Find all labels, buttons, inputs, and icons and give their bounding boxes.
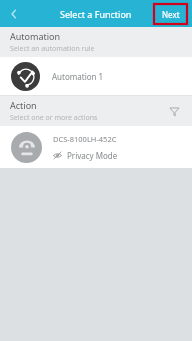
button[interactable]: Next: [154, 4, 187, 24]
button[interactable]: DCS-8100LH-452C: [0, 126, 192, 168]
staticText: Select a Function: [60, 8, 132, 20]
staticText: Action: [10, 99, 37, 111]
staticText: Select one or more actions: [10, 113, 98, 123]
button[interactable]: Back: [0, 0, 27, 27]
staticText: DCS-8100LH-452C: [53, 134, 117, 144]
staticText: Automation 1: [52, 71, 104, 82]
staticText: Select an automation rule: [10, 44, 95, 54]
staticText: Next: [162, 9, 180, 20]
button[interactable]: Filter: [165, 102, 183, 120]
staticText: Privacy Mode: [67, 150, 118, 161]
button[interactable]: Automation 1: [0, 57, 192, 95]
staticText: Automation: [10, 30, 61, 42]
